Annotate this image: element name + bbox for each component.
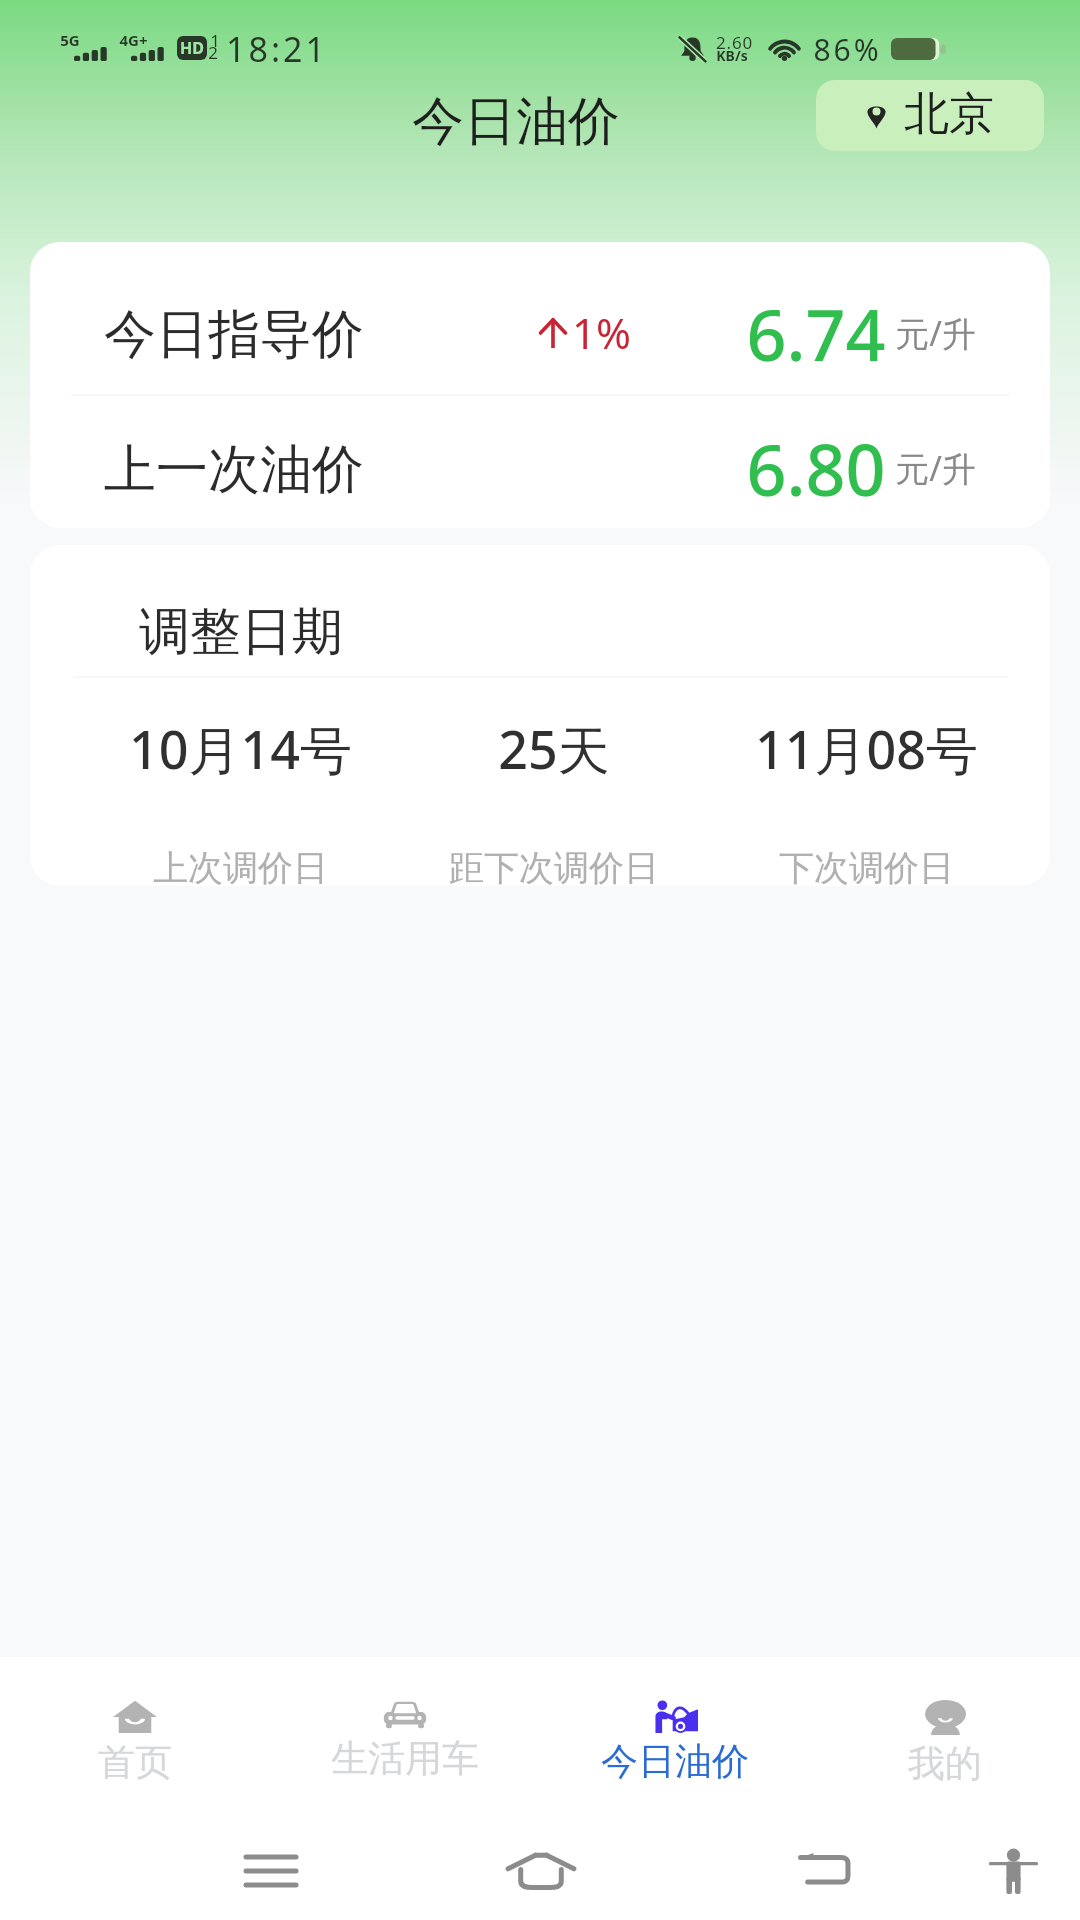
staticText: 11月08号 — [755, 713, 978, 784]
staticText: 我的 — [908, 1740, 982, 1787]
button[interactable]: 上一次油价 — [30, 395, 1050, 528]
staticText: 今日油价 — [601, 1738, 749, 1785]
button[interactable]: 今日指导价 — [30, 242, 1050, 395]
staticText: 4G+ — [119, 30, 148, 50]
staticText: 2 — [208, 41, 218, 64]
staticText: 生活用车 — [331, 1735, 479, 1782]
staticText: 元/升 — [895, 310, 976, 356]
button[interactable]: Home — [496, 1821, 586, 1920]
staticText: 北京 — [904, 86, 994, 143]
staticText: 今日油价 — [412, 89, 620, 155]
button[interactable]: 首页 — [0, 1657, 270, 1794]
button[interactable]: Back — [778, 1819, 868, 1919]
staticText: 调整日期 — [139, 600, 343, 664]
staticText: 5G — [60, 30, 80, 50]
staticText: HD — [180, 37, 204, 59]
staticText: 今日指导价 — [104, 302, 364, 368]
staticText: 6.74 — [746, 286, 886, 381]
staticText: 上一次油价 — [104, 437, 364, 503]
button[interactable]: 生活用车 — [270, 1657, 540, 1794]
button[interactable]: 今日油价 — [540, 1657, 810, 1794]
staticText: 下次调价日 — [779, 846, 954, 886]
button[interactable]: 10月14号 — [100, 713, 380, 886]
button[interactable]: 我的 — [810, 1657, 1080, 1794]
staticText: 上次调价日 — [153, 846, 328, 886]
button[interactable]: Accessibility — [968, 1822, 1058, 1920]
staticText: 首页 — [98, 1739, 172, 1786]
staticText: 86% — [813, 29, 882, 70]
button[interactable]: 25天 — [414, 713, 694, 886]
staticText: 25天 — [498, 713, 610, 784]
button[interactable]: Recent apps — [226, 1821, 316, 1920]
button[interactable]: 11月08号 — [726, 713, 1006, 886]
staticText: 1% — [572, 304, 631, 361]
button[interactable]: 北京 — [816, 80, 1044, 151]
staticText: 2.60 — [716, 31, 753, 54]
staticText: 18:21 — [226, 26, 328, 72]
staticText: 元/升 — [895, 445, 976, 491]
staticText: 10月14号 — [129, 713, 352, 784]
staticText: KB/s — [716, 46, 748, 65]
staticText: 6.80 — [746, 421, 886, 516]
staticText: 距下次调价日 — [449, 846, 659, 886]
staticText: 1 — [210, 29, 220, 52]
